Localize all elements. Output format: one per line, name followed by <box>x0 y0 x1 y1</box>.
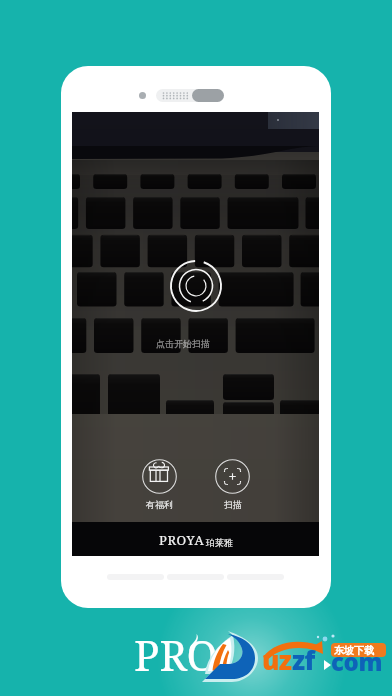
staticText: PROYA <box>159 531 205 549</box>
staticText: zf <box>292 642 315 677</box>
button[interactable]: 有福利 <box>142 459 177 510</box>
staticText: uz <box>262 642 292 677</box>
staticText: 珀莱雅 <box>206 537 233 548</box>
staticText: com <box>331 645 383 678</box>
staticText: 有福利 <box>146 499 173 510</box>
staticText: 东坡下载 <box>334 644 374 657</box>
staticText: PRO <box>134 626 218 683</box>
staticText: 扫描 <box>224 499 242 510</box>
staticText: 点击开始扫描 <box>156 338 210 349</box>
button[interactable]: 扫描 <box>215 459 250 510</box>
